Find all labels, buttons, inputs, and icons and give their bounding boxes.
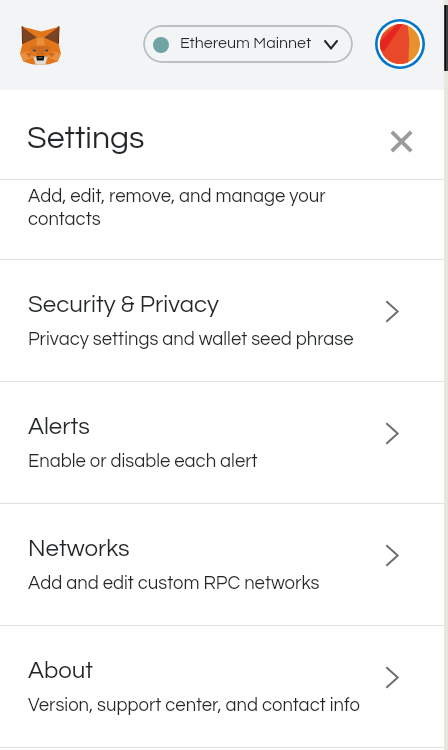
staticText: Settings bbox=[27, 122, 145, 155]
staticText: Privacy settings and wallet seed phrase bbox=[28, 330, 354, 349]
staticText: Add, edit, remove, and manage your conta… bbox=[28, 187, 326, 228]
staticText: About bbox=[28, 658, 94, 683]
button[interactable]: Networks bbox=[0, 504, 448, 625]
button[interactable]: Ethereum Mainnet bbox=[143, 25, 353, 63]
staticText: Security & Privacy bbox=[28, 292, 219, 317]
staticText: Enable or disable each alert bbox=[28, 452, 258, 471]
staticText: Add and edit custom RPC networks bbox=[28, 574, 320, 593]
button[interactable]: Close bbox=[380, 120, 422, 162]
staticText: Networks bbox=[28, 536, 130, 561]
button[interactable]: Security & Privacy bbox=[0, 260, 448, 381]
button[interactable]: Add, edit, remove, and manage your conta… bbox=[0, 180, 448, 259]
staticText: Alerts bbox=[28, 414, 90, 439]
staticText: Ethereum Mainnet bbox=[180, 35, 312, 51]
staticText: Version, support center, and contact inf… bbox=[28, 696, 360, 715]
button[interactable]: About bbox=[0, 626, 448, 747]
button[interactable]: Alerts bbox=[0, 382, 448, 503]
